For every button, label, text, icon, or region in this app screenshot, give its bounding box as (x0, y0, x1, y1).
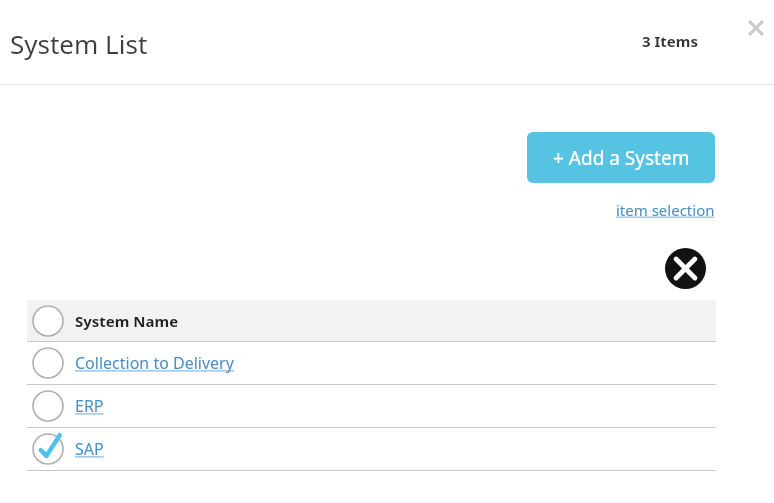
button[interactable]: item selection (600, 198, 715, 222)
staticText: System Name (75, 311, 179, 331)
staticText: Collection to Delivery (75, 352, 234, 374)
staticText: 3 Items (642, 31, 698, 51)
button[interactable]: Close (740, 12, 772, 44)
button[interactable]: System Name (27, 300, 716, 341)
staticText: ERP (75, 395, 104, 417)
button[interactable]: Collection to Delivery (27, 342, 716, 384)
button[interactable]: Remove selection (665, 248, 706, 289)
staticText: SAP (75, 438, 104, 460)
staticText: System List (10, 26, 148, 61)
staticText: item selection (616, 200, 715, 220)
button[interactable]: ERP (27, 385, 716, 427)
staticText: + Add a System (553, 145, 690, 171)
button[interactable]: + Add a System (527, 132, 715, 183)
button[interactable]: SAP (27, 428, 716, 470)
